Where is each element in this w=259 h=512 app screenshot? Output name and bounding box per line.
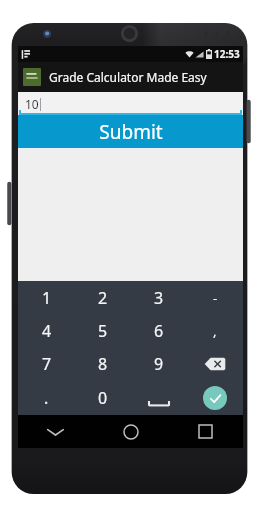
button[interactable]: .	[18, 381, 75, 415]
button[interactable]: Delete	[187, 347, 243, 381]
staticText: 7	[42, 353, 52, 375]
staticText: 6	[154, 320, 164, 342]
button[interactable]: 2	[75, 281, 131, 314]
staticText: Submit	[99, 119, 163, 145]
staticText: 5	[98, 320, 108, 342]
button[interactable]: 1	[18, 281, 75, 314]
staticText: 3	[154, 287, 164, 309]
button[interactable]: 4	[18, 314, 75, 347]
button[interactable]: Space	[131, 381, 187, 415]
button[interactable]: 7	[18, 347, 75, 381]
button[interactable]: 6	[131, 314, 187, 347]
button[interactable]: App icon	[23, 68, 41, 86]
staticText: .	[44, 387, 49, 409]
button[interactable]: Done	[187, 381, 243, 415]
staticText: 10	[25, 96, 39, 112]
staticText: Grade Calculator Made Easy	[49, 69, 207, 85]
staticText: 0	[98, 387, 108, 409]
staticText: 8	[98, 353, 108, 375]
button[interactable]: 0	[75, 381, 131, 415]
staticText: -	[213, 289, 218, 307]
button[interactable]: 10	[19, 92, 242, 115]
button[interactable]: 5	[75, 314, 131, 347]
staticText: 12:53	[214, 47, 240, 61]
button[interactable]: Home	[93, 415, 168, 448]
button[interactable]: 3	[131, 281, 187, 314]
button[interactable]: ,	[187, 314, 243, 347]
button[interactable]: 9	[131, 347, 187, 381]
button[interactable]: Recent apps	[168, 415, 243, 448]
button[interactable]: Submit	[18, 115, 243, 148]
button[interactable]: 8	[75, 347, 131, 381]
staticText: 4	[42, 320, 52, 342]
staticText: 1	[42, 287, 52, 309]
staticText: 2	[98, 287, 108, 309]
button[interactable]: Back	[18, 415, 93, 448]
staticText: ,	[213, 322, 217, 340]
staticText: 9	[154, 353, 164, 375]
button[interactable]: -	[187, 281, 243, 314]
